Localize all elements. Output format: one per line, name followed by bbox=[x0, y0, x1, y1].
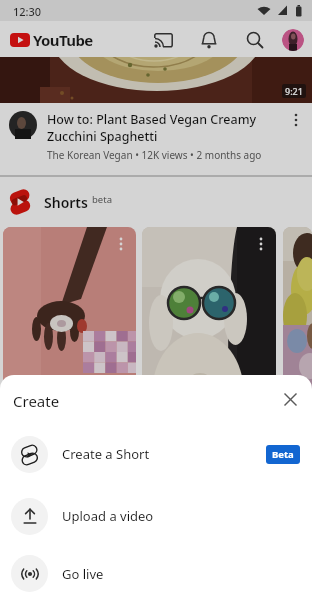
button[interactable] bbox=[238, 23, 272, 57]
button[interactable]: 9:21 bbox=[0, 57, 312, 103]
staticText: Beta bbox=[272, 448, 294, 461]
button[interactable] bbox=[283, 227, 312, 463]
button[interactable] bbox=[146, 23, 180, 57]
staticText: Create bbox=[13, 391, 60, 411]
button[interactable]: How to: Plant Based Vegan Creamy bbox=[9, 111, 308, 175]
button[interactable] bbox=[3, 227, 136, 463]
button[interactable] bbox=[282, 29, 304, 51]
button[interactable]: Create a Short bbox=[0, 423, 312, 485]
staticText: Go live bbox=[62, 565, 104, 583]
staticText: Shorts bbox=[44, 193, 88, 212]
staticText: YouTube bbox=[33, 30, 93, 50]
staticText: How to: Plant Based Vegan Creamy bbox=[47, 111, 257, 128]
staticText: 12:30 bbox=[13, 4, 42, 19]
staticText: Zucchini Spaghetti bbox=[47, 128, 158, 145]
staticText: Create a Short bbox=[62, 445, 150, 463]
button[interactable] bbox=[284, 111, 308, 135]
button[interactable] bbox=[277, 386, 303, 412]
staticText: The Korean Vegan • 12K views • 2 months … bbox=[47, 148, 262, 162]
staticText: Upload a video bbox=[62, 507, 154, 525]
button[interactable]: Go live bbox=[0, 547, 312, 600]
staticText: 9:21 bbox=[285, 85, 303, 97]
button[interactable]: Upload a video bbox=[0, 485, 312, 547]
button[interactable]: YouTube bbox=[10, 30, 93, 50]
staticText: beta bbox=[92, 193, 112, 206]
button[interactable] bbox=[192, 23, 226, 57]
button[interactable] bbox=[142, 227, 276, 463]
